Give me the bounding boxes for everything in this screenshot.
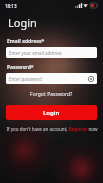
staticText: If you don't have an account, Register n… — [6, 126, 98, 132]
button[interactable]: Enter password — [6, 73, 97, 84]
staticText: Login — [43, 109, 60, 117]
staticText: Forgot Password? — [30, 91, 73, 98]
staticText: Enter password — [9, 76, 87, 82]
staticText: Login — [8, 15, 37, 30]
button[interactable]: Enter your email address — [6, 47, 97, 58]
staticText: 18:13 — [5, 3, 17, 9]
button[interactable]: If you don't have an account, Register n… — [0, 126, 103, 132]
staticText: Password* — [7, 64, 34, 71]
button[interactable]: Login — [6, 105, 97, 120]
button[interactable]: Show password — [87, 75, 94, 82]
button[interactable]: Forgot Password? — [0, 91, 103, 98]
staticText: Enter your email address — [9, 50, 94, 56]
staticText: Email address* — [7, 38, 45, 45]
